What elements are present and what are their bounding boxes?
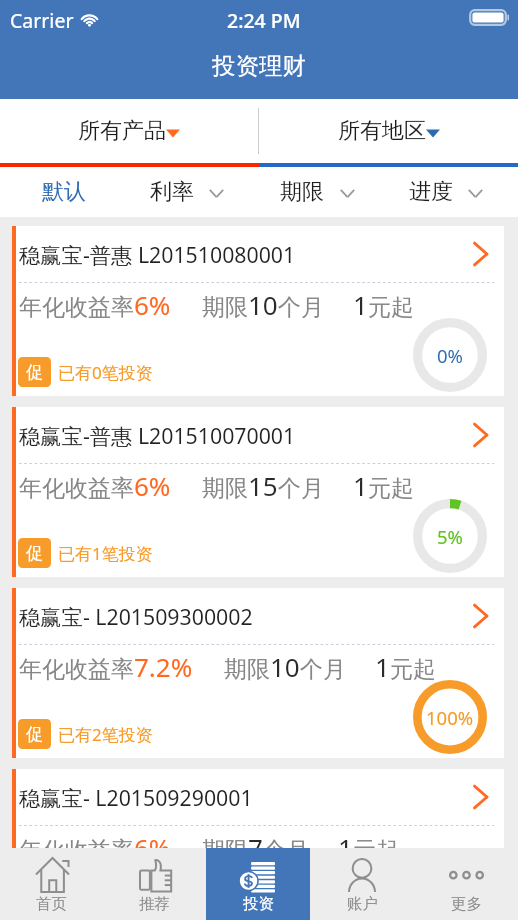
staticText: 年化收益率 [19, 655, 134, 684]
button[interactable] [388, 167, 518, 217]
button[interactable]: 稳赢宝-普惠 L201510080001 [12, 226, 504, 396]
staticText: 5% [437, 524, 463, 549]
staticText: 7 [248, 830, 263, 865]
staticText: 投资理财 [212, 51, 306, 81]
staticText: 已有0笔投资 [58, 361, 153, 384]
button[interactable]: 投资 [206, 848, 310, 920]
button[interactable]: 所有地区 [259, 99, 518, 163]
staticText: 6% [134, 287, 171, 322]
staticText: Carrier [10, 7, 74, 34]
staticText: 期限 [280, 178, 324, 206]
staticText: 个月 [263, 836, 309, 865]
staticText: 10 [248, 287, 278, 322]
staticText: 期限 [202, 474, 248, 503]
staticText: 更多 [451, 894, 482, 914]
staticText: 首页 [36, 894, 67, 914]
staticText: 默认 [42, 178, 86, 206]
staticText: 1 [353, 287, 368, 322]
staticText: 已有1笔投资 [58, 542, 153, 565]
staticText: 促 [26, 543, 43, 564]
staticText: 利率 [150, 178, 194, 206]
button[interactable]: 稳赢宝-普惠 L201510070001 [12, 407, 504, 577]
staticText: 稳赢宝- L201509290001 [19, 783, 253, 812]
other: 查看详情 [473, 784, 488, 810]
staticText: 1 [353, 468, 368, 503]
staticText: 0% [437, 343, 463, 368]
button[interactable]: 首页 [0, 848, 103, 920]
staticText: 促 [26, 724, 43, 745]
staticText: 所有产品 [78, 117, 166, 145]
staticText: 所有地区 [338, 117, 426, 145]
staticText: 1 [375, 649, 390, 684]
button[interactable] [258, 167, 388, 217]
staticText: 10 [270, 649, 300, 684]
other: 查看详情 [473, 241, 488, 267]
button[interactable] [0, 167, 129, 217]
staticText: 年化收益率 [19, 836, 134, 865]
staticText: 年化收益率 [19, 293, 134, 322]
staticText: 100% [426, 705, 474, 730]
staticText: 期限 [224, 655, 270, 684]
staticText: 进度 [409, 178, 453, 206]
staticText: 6% [134, 468, 171, 503]
staticText: 期限 [202, 293, 248, 322]
button[interactable] [129, 167, 258, 217]
button[interactable]: 更多 [414, 848, 518, 920]
staticText: 个月 [278, 474, 324, 503]
staticText: 稳赢宝-普惠 L201510080001 [19, 240, 296, 269]
staticText: 账户 [347, 894, 378, 914]
staticText: 个月 [278, 293, 324, 322]
button[interactable]: 稳赢宝- L201509290001 [12, 769, 504, 920]
staticText: 已有2笔投资 [58, 723, 153, 746]
other: 查看详情 [473, 603, 488, 629]
staticText: 投资 [243, 894, 274, 914]
staticText: 促 [26, 905, 43, 920]
staticText: 期限 [202, 836, 248, 865]
staticText: 促 [26, 362, 43, 383]
staticText: 已有0笔投资 [58, 904, 153, 920]
button[interactable]: 推荐 [103, 848, 206, 920]
button[interactable]: 账户 [310, 848, 414, 920]
staticText: 元起 [368, 474, 414, 503]
staticText: 0% [437, 886, 463, 911]
staticText: 元起 [390, 655, 436, 684]
staticText: 元起 [353, 836, 399, 865]
staticText: 稳赢宝-普惠 L201510070001 [19, 421, 296, 450]
other: 查看详情 [473, 422, 488, 448]
staticText: 年化收益率 [19, 474, 134, 503]
staticText: 2:24 PM [227, 7, 301, 34]
button[interactable]: 稳赢宝- L201509300002 [12, 588, 504, 758]
staticText: 个月 [300, 655, 346, 684]
staticText: 1 [338, 830, 353, 865]
staticText: 稳赢宝- L201509300002 [19, 602, 253, 631]
button[interactable]: 所有产品 [0, 99, 258, 163]
staticText: 6% [134, 830, 171, 865]
staticText: 推荐 [139, 894, 170, 914]
staticText: 15 [248, 468, 278, 503]
staticText: 元起 [368, 293, 414, 322]
staticText: 7.2% [134, 649, 193, 684]
